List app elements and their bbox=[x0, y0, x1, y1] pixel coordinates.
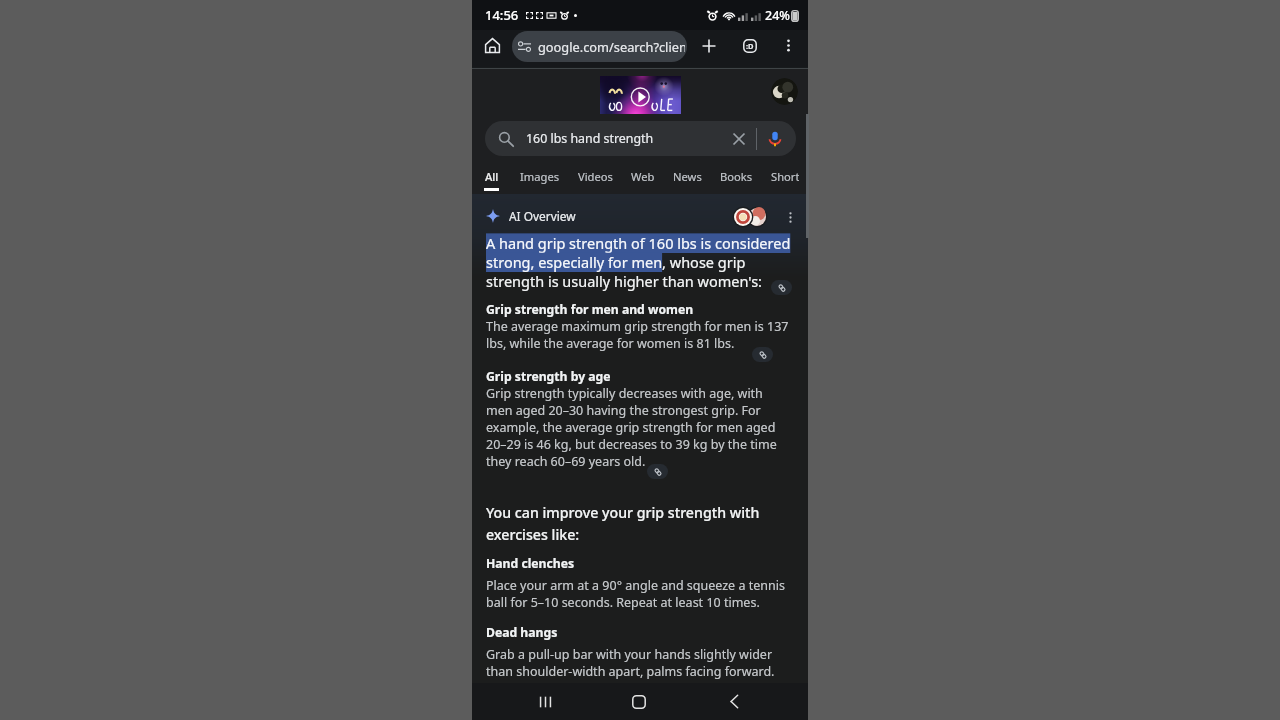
button[interactable]: Shorts bbox=[762, 169, 808, 194]
staticText: 160 lbs hand strength bbox=[526, 130, 732, 147]
button[interactable]: Images bbox=[511, 169, 569, 194]
button[interactable]: Back bbox=[714, 683, 754, 720]
button[interactable]: Videos bbox=[569, 169, 622, 194]
button[interactable]: Google Doodle bbox=[600, 76, 681, 114]
button[interactable]: More options bbox=[781, 208, 799, 226]
button[interactable]: Home bbox=[477, 30, 507, 60]
staticText: 24% bbox=[765, 7, 790, 24]
staticText: Dead hangs bbox=[486, 624, 558, 641]
button[interactable]: Source link bbox=[771, 280, 792, 295]
button[interactable]: google.com/search?client bbox=[512, 31, 687, 62]
button[interactable]: AI Overview bbox=[486, 205, 796, 227]
button[interactable]: Books bbox=[711, 169, 762, 194]
staticText: Books bbox=[720, 169, 753, 184]
staticText: Shorts bbox=[771, 169, 799, 184]
button[interactable]: New tab bbox=[693, 30, 724, 61]
button[interactable]: More options bbox=[773, 30, 804, 61]
button[interactable]: Home bbox=[619, 683, 659, 720]
staticText: Videos bbox=[578, 169, 613, 184]
button[interactable]: All bbox=[472, 169, 511, 194]
staticText: All bbox=[485, 169, 499, 184]
staticText: Grab a pull-up bar with your hands sligh… bbox=[486, 646, 796, 680]
staticText: Web bbox=[631, 169, 655, 184]
button[interactable]: Source link bbox=[752, 347, 773, 362]
button[interactable]: Sources bbox=[734, 208, 766, 226]
staticText: Images bbox=[520, 169, 560, 184]
button[interactable]: 160 lbs hand strength bbox=[485, 121, 796, 156]
staticText: :D bbox=[746, 41, 754, 51]
staticText: Place your arm at a 90° angle and squeez… bbox=[486, 577, 796, 611]
staticText: The average maximum grip strength for me… bbox=[486, 318, 796, 352]
staticText: AI Overview bbox=[509, 208, 576, 224]
button[interactable]: News bbox=[664, 169, 711, 194]
staticText: Hand clenches bbox=[486, 555, 575, 572]
staticText: google.com/search?client bbox=[538, 38, 685, 55]
staticText: Grip strength for men and women bbox=[486, 301, 694, 318]
staticText: 14:56 bbox=[485, 6, 519, 24]
staticText: Grip strength by age bbox=[486, 368, 611, 385]
button[interactable]: Account bbox=[771, 78, 798, 105]
staticText: A hand grip strength of 160 lbs is consi… bbox=[486, 233, 796, 291]
button[interactable]: Recent apps bbox=[525, 683, 565, 720]
button[interactable]: Tab switcher bbox=[734, 30, 765, 61]
staticText: News bbox=[673, 169, 702, 184]
staticText: Grip strength typically decreases with a… bbox=[486, 385, 777, 470]
staticText: You can improve your grip strength with … bbox=[486, 503, 796, 544]
button[interactable]: Source link bbox=[647, 464, 668, 479]
button[interactable]: Web bbox=[622, 169, 664, 194]
